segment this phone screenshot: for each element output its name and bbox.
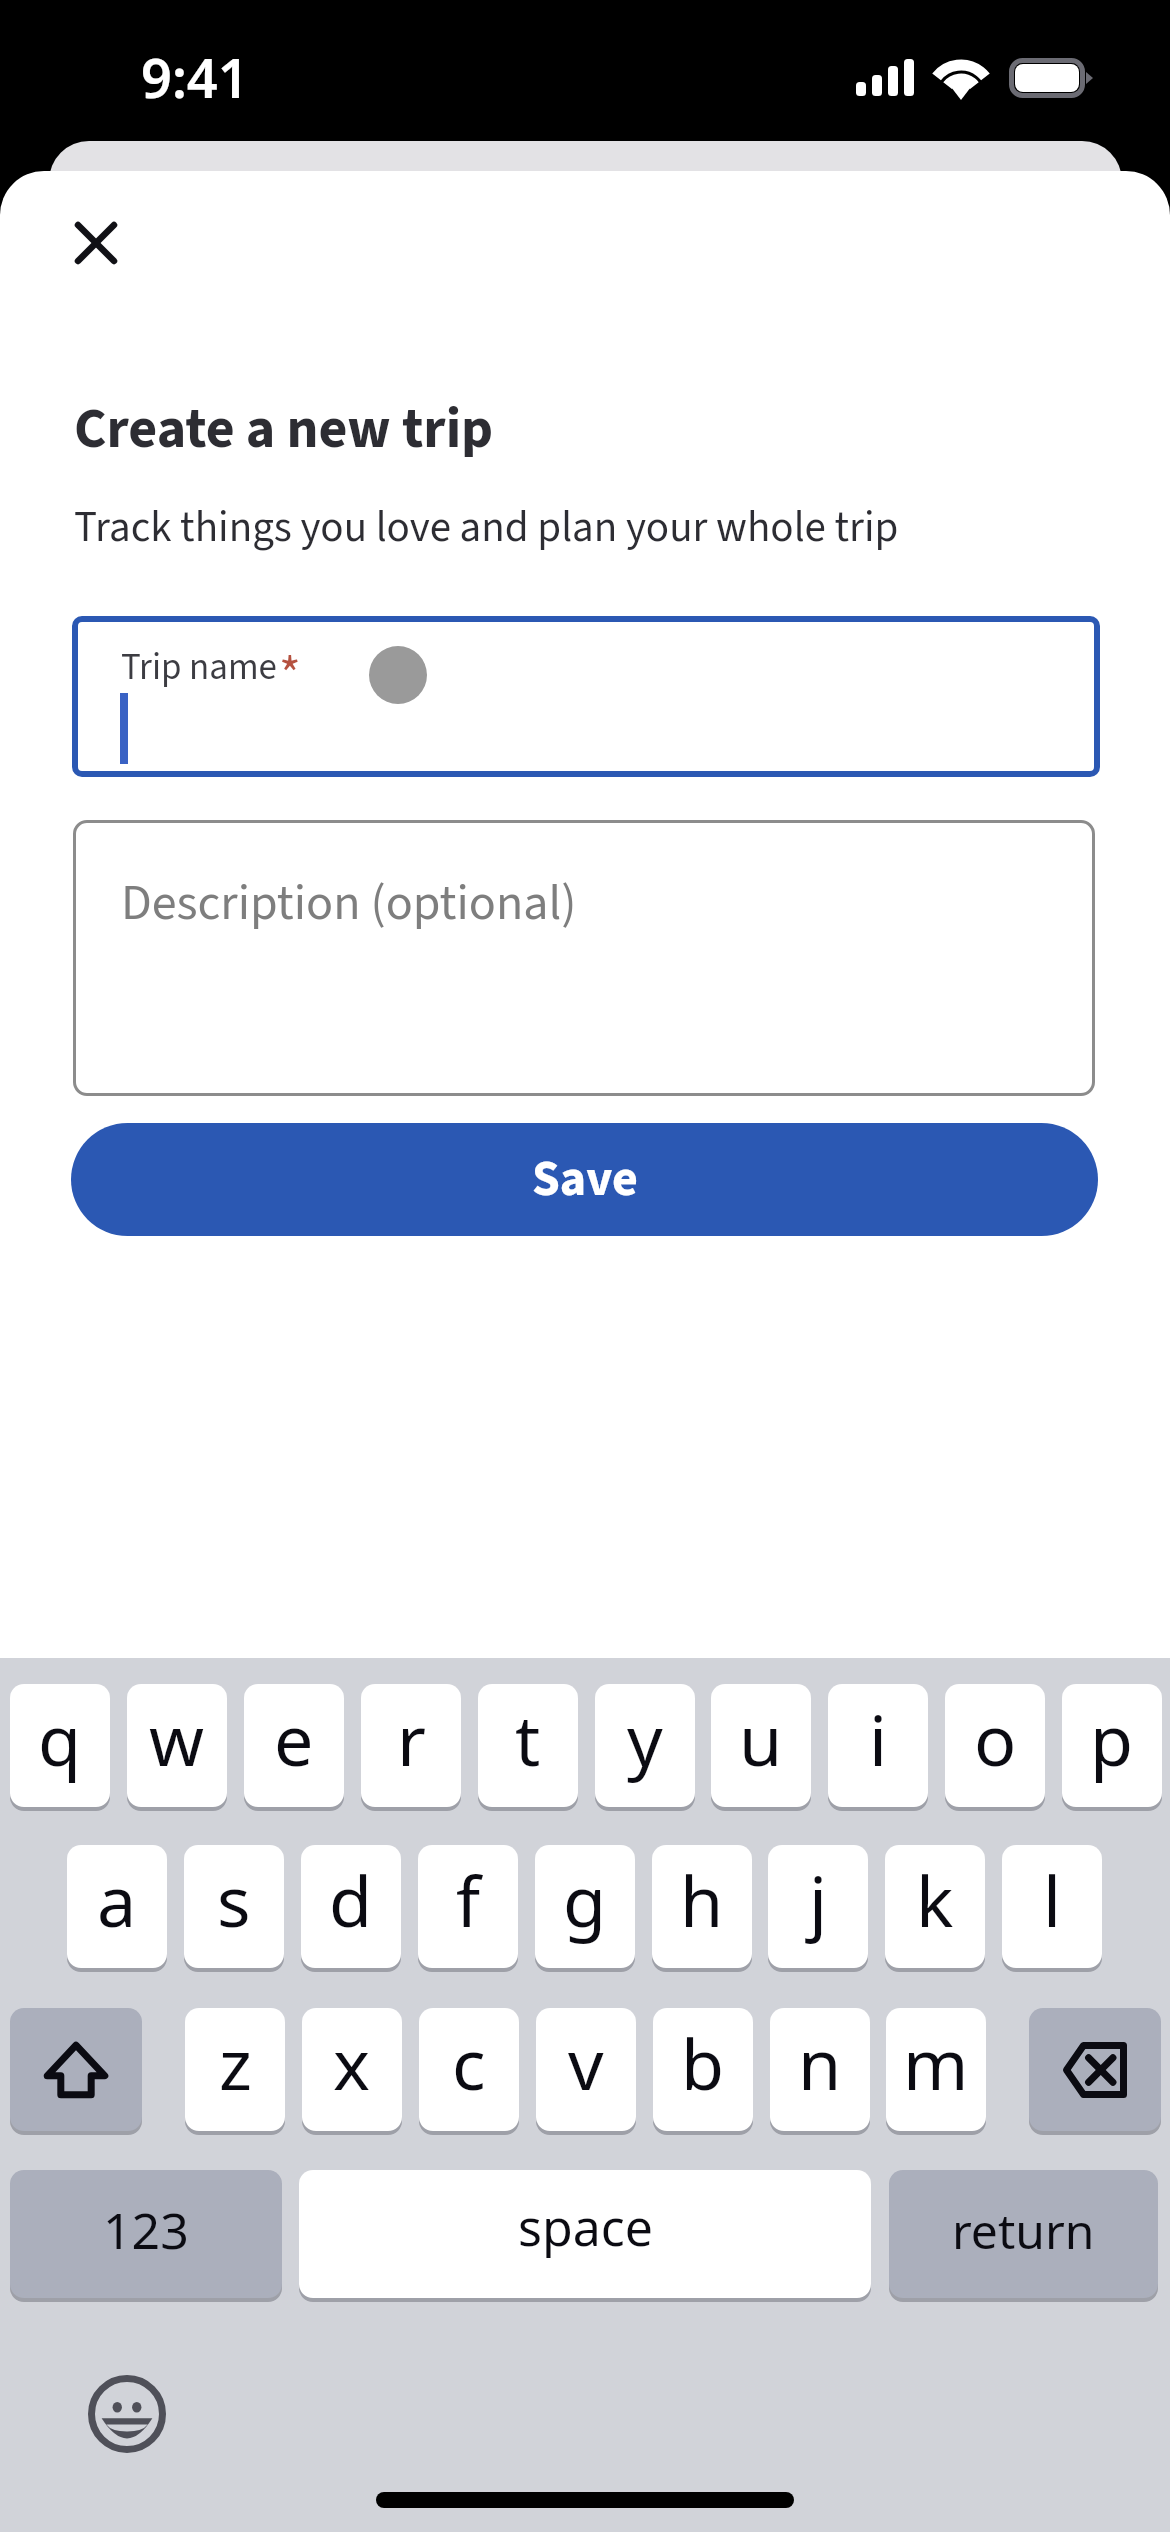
staticText: c [452,2015,486,2110]
button[interactable]: j [768,1845,868,1968]
staticText: Description (optional) [121,868,577,939]
staticText: return [952,2198,1095,2263]
button[interactable]: h [652,1845,752,1968]
staticText: u [739,1691,783,1786]
staticText: p [1090,1691,1134,1786]
staticText: Create a new trip [74,390,494,470]
staticText: j [809,1852,828,1947]
staticText: f [456,1852,481,1947]
staticText: * [279,639,301,713]
staticText: 9:41 [141,40,249,114]
button[interactable]: g [535,1845,635,1968]
staticText: b [681,2015,725,2110]
staticText: k [916,1852,954,1947]
button[interactable]: a [67,1845,167,1968]
button[interactable]: r [361,1684,461,1807]
staticText: Track things you love and plan your whol… [74,497,899,558]
button[interactable]: space [299,2170,871,2298]
button[interactable]: t [478,1684,578,1807]
staticText: m [903,2015,969,2110]
staticText: Save [532,1144,638,1215]
staticText: space [518,2193,653,2261]
button[interactable]: f [418,1845,518,1968]
button[interactable]: v [536,2008,636,2131]
button[interactable]: i [828,1684,928,1807]
button[interactable]: Emoji [88,2375,166,2453]
staticText: n [798,2015,842,2110]
staticText: Trip name [121,641,277,694]
button[interactable]: Backspace [1029,2008,1161,2131]
button[interactable]: z [185,2008,285,2131]
button[interactable]: o [945,1684,1045,1807]
button[interactable]: Description (optional) [73,820,1095,1096]
button[interactable]: m [886,2008,986,2131]
staticText: e [274,1691,314,1786]
staticText: d [329,1852,373,1947]
staticText: s [217,1852,251,1947]
button[interactable]: u [711,1684,811,1807]
staticText: z [219,2015,252,2110]
button[interactable]: Numbers [10,2170,282,2298]
button[interactable]: p [1062,1684,1162,1807]
staticText: 123 [103,2196,189,2264]
staticText: l [1043,1852,1062,1947]
button[interactable]: x [302,2008,402,2131]
staticText: x [333,2015,371,2110]
button[interactable]: b [653,2008,753,2131]
button[interactable]: l [1002,1845,1102,1968]
button[interactable]: Shift [10,2008,142,2131]
staticText: i [869,1691,888,1786]
staticText: a [97,1852,137,1947]
button[interactable]: k [885,1845,985,1968]
button[interactable]: c [419,2008,519,2131]
button[interactable]: y [595,1684,695,1807]
staticText: w [149,1691,205,1786]
button[interactable]: Return [889,2170,1158,2298]
button[interactable]: w [127,1684,227,1807]
staticText: h [680,1852,724,1947]
button[interactable]: d [301,1845,401,1968]
button[interactable]: Trip name [72,616,1100,777]
staticText: r [397,1691,426,1786]
staticText: v [568,2015,604,2110]
staticText: y [627,1691,663,1786]
staticText: o [974,1691,1017,1786]
staticText: t [515,1691,541,1786]
button[interactable]: n [770,2008,870,2131]
button[interactable]: Close [48,195,144,291]
button[interactable]: s [184,1845,284,1968]
button[interactable]: e [244,1684,344,1807]
staticText: g [563,1852,607,1947]
button[interactable]: Save [71,1123,1098,1236]
staticText: q [38,1691,82,1786]
button[interactable]: q [10,1684,110,1807]
